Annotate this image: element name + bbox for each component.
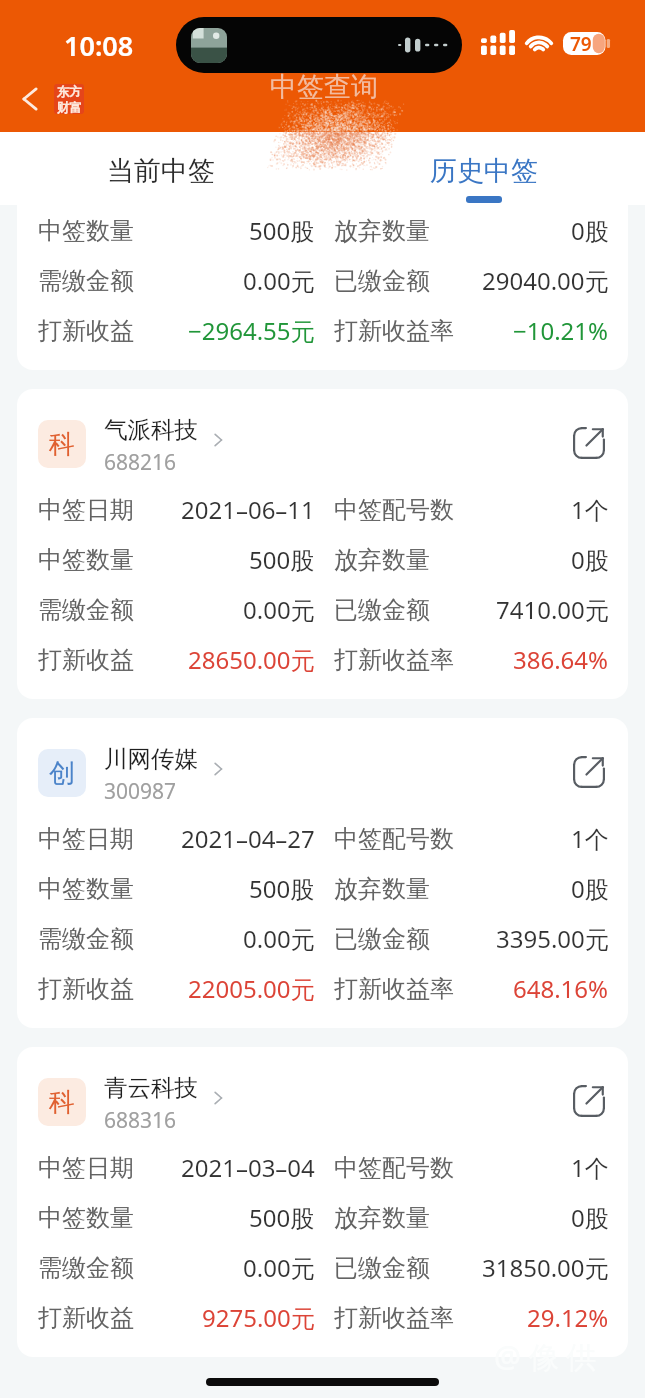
staticText: 打新收益 — [38, 974, 134, 1004]
staticText: 1个 — [571, 493, 609, 526]
staticText: 79 — [570, 31, 592, 54]
staticText: 500股 — [249, 543, 315, 576]
staticText: 打新收益率 — [334, 645, 454, 675]
button[interactable]: 科 — [17, 1047, 628, 1357]
staticText: 东方 — [57, 84, 82, 100]
button[interactable]: 中签数量 — [17, 205, 628, 370]
button[interactable]: Back — [12, 80, 90, 118]
button[interactable]: Open stock detail — [567, 750, 611, 794]
staticText: 29.12% — [527, 1301, 609, 1334]
staticText: 0.00元 — [243, 1251, 315, 1284]
staticText: 9275.00元 — [202, 1301, 315, 1334]
staticText: 需缴金额 — [38, 266, 134, 296]
staticText: 放弃数量 — [334, 545, 430, 575]
staticText: 1个 — [571, 822, 609, 855]
staticText: 打新收益 — [38, 645, 134, 675]
staticText: 10:08 — [64, 27, 134, 64]
staticText: 打新收益率 — [334, 1303, 454, 1333]
staticText: 已缴金额 — [334, 266, 430, 296]
staticText: 2021–04–27 — [181, 822, 315, 855]
button[interactable]: 历史中签 — [322, 132, 645, 205]
staticText: 中签配号数 — [334, 824, 454, 854]
staticText: 2021–06–11 — [181, 493, 315, 526]
staticText: 打新收益 — [38, 1303, 134, 1333]
staticText: 386.64% — [513, 643, 609, 676]
staticText: 7410.00元 — [496, 593, 609, 626]
staticText: 0.00元 — [243, 922, 315, 955]
button[interactable]: 科 — [17, 389, 628, 699]
staticText: 中签日期 — [38, 1153, 134, 1183]
staticText: 300987 — [104, 777, 177, 806]
button[interactable]: Open stock detail — [567, 421, 611, 465]
staticText: 放弃数量 — [334, 1203, 430, 1233]
staticText: 已缴金额 — [334, 924, 430, 954]
staticText: 创 — [49, 757, 75, 790]
staticText: 打新收益率 — [334, 974, 454, 1004]
staticText: 已缴金额 — [334, 1253, 430, 1283]
staticText: 气派科技 — [104, 415, 198, 445]
staticText: 需缴金额 — [38, 595, 134, 625]
button[interactable]: 科 — [38, 1071, 229, 1133]
staticText: 500股 — [249, 214, 315, 247]
staticText: 打新收益 — [38, 316, 134, 346]
staticText: 科 — [49, 428, 75, 461]
staticText: 0股 — [571, 1201, 609, 1234]
staticText: 中签查询 — [270, 70, 378, 104]
staticText: 青云科技 — [104, 1073, 198, 1103]
staticText: 688316 — [104, 1106, 177, 1135]
staticText: 648.16% — [513, 972, 609, 1005]
staticText: −2964.55元 — [188, 314, 315, 347]
staticText: 29040.00元 — [482, 264, 609, 297]
staticText: 历史中签 — [430, 154, 538, 188]
button[interactable]: 创 — [38, 742, 229, 804]
staticText: 3395.00元 — [496, 922, 609, 955]
staticText: 500股 — [249, 872, 315, 905]
staticText: 财富 — [57, 100, 82, 114]
staticText: 28650.00元 — [188, 643, 315, 676]
staticText: 打新收益率 — [334, 316, 454, 346]
staticText: 0.00元 — [243, 593, 315, 626]
button[interactable]: 创 — [17, 718, 628, 1028]
staticText: 中签配号数 — [334, 1153, 454, 1183]
staticText: 中签配号数 — [334, 495, 454, 525]
staticText: 中签数量 — [38, 1203, 134, 1233]
staticText: 中签数量 — [38, 216, 134, 246]
staticText: 当前中签 — [107, 154, 215, 188]
staticText: 需缴金额 — [38, 1253, 134, 1283]
staticText: 22005.00元 — [188, 972, 315, 1005]
staticText: 放弃数量 — [334, 216, 430, 246]
staticText: 1个 — [571, 1151, 609, 1184]
staticText: @ 像 供 — [494, 1336, 597, 1377]
staticText: 放弃数量 — [334, 874, 430, 904]
staticText: 0股 — [571, 543, 609, 576]
staticText: 已缴金额 — [334, 595, 430, 625]
staticText: 31850.00元 — [482, 1251, 609, 1284]
button[interactable]: 当前中签 — [0, 132, 322, 205]
staticText: 0股 — [571, 872, 609, 905]
staticText: −10.21% — [513, 314, 609, 347]
staticText: 中签日期 — [38, 824, 134, 854]
staticText: 中签日期 — [38, 495, 134, 525]
button[interactable]: Open stock detail — [567, 1079, 611, 1123]
staticText: 需缴金额 — [38, 924, 134, 954]
button[interactable]: 科 — [38, 413, 229, 475]
staticText: 中签数量 — [38, 545, 134, 575]
staticText: 中签数量 — [38, 874, 134, 904]
staticText: 0股 — [571, 214, 609, 247]
staticText: 688216 — [104, 448, 177, 477]
staticText: 2021–03–04 — [181, 1151, 315, 1184]
staticText: 500股 — [249, 1201, 315, 1234]
staticText: 科 — [49, 1086, 75, 1119]
staticText: 0.00元 — [243, 264, 315, 297]
staticText: 川网传媒 — [104, 744, 198, 774]
